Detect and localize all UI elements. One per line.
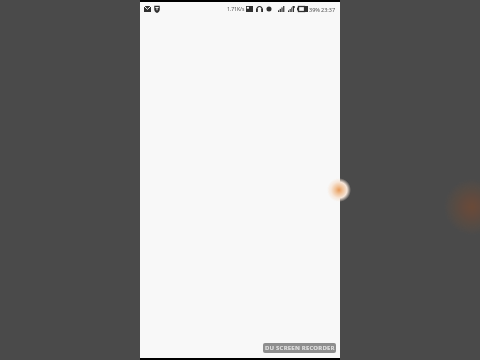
staticText: 39% bbox=[309, 6, 320, 13]
staticText: 1.71K/s bbox=[227, 6, 245, 13]
button[interactable]: 39% bbox=[309, 6, 320, 13]
button[interactable]: 23:37 bbox=[321, 6, 336, 13]
button[interactable]: Headphones connected bbox=[256, 6, 263, 12]
button[interactable]: Security shield bbox=[154, 5, 160, 13]
button[interactable]: SD card bbox=[246, 6, 253, 12]
button[interactable]: Battery 39 percent bbox=[297, 6, 308, 12]
button[interactable]: SIM 2 signal bbox=[288, 6, 295, 12]
button[interactable]: SIM 1 signal bbox=[278, 6, 285, 12]
button[interactable]: DU SCREEN RECORDER bbox=[263, 343, 336, 353]
button[interactable]: 1.71K/s bbox=[227, 6, 245, 13]
staticText: 23:37 bbox=[321, 6, 336, 13]
staticText: DU SCREEN RECORDER bbox=[265, 344, 335, 352]
button[interactable]: Do not disturb bbox=[266, 6, 272, 12]
button[interactable]: Unread mail bbox=[144, 6, 151, 12]
